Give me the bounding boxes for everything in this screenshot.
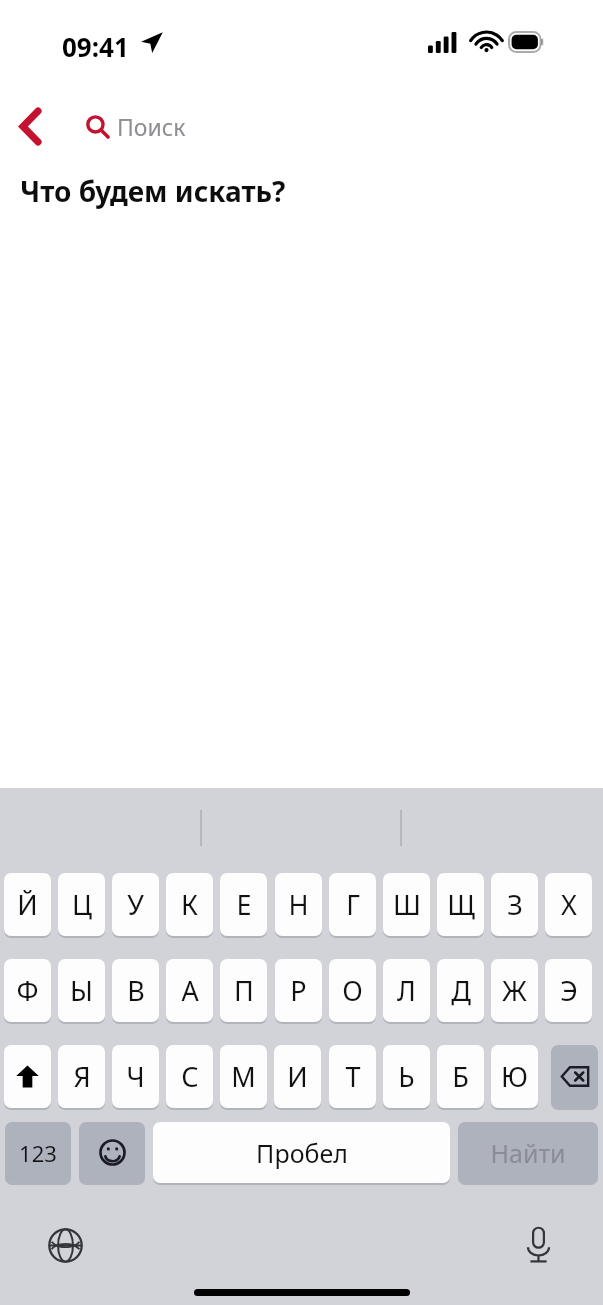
button[interactable]: У xyxy=(112,873,159,936)
button[interactable]: З xyxy=(491,873,538,936)
staticText: Ц xyxy=(72,886,92,923)
staticText: Ф xyxy=(16,972,39,1009)
button[interactable]: Р xyxy=(275,959,322,1022)
button[interactable]: О xyxy=(329,959,376,1022)
staticText: Ы xyxy=(70,972,93,1009)
staticText: Ж xyxy=(502,972,527,1009)
staticText: Е xyxy=(236,886,252,923)
button[interactable]: Ж xyxy=(491,959,538,1022)
button[interactable]: Х xyxy=(545,873,592,936)
staticText: Ю xyxy=(501,1058,528,1095)
button[interactable]: Ю xyxy=(491,1045,538,1108)
staticText: Э xyxy=(560,972,578,1009)
staticText: Н xyxy=(288,886,309,923)
staticText: О xyxy=(342,972,363,1009)
staticText: З xyxy=(507,886,523,923)
staticText: Ш xyxy=(393,886,421,923)
button[interactable]: Пробел xyxy=(153,1122,450,1183)
button[interactable]: Й xyxy=(4,873,51,936)
staticText: Ь xyxy=(398,1058,415,1095)
button[interactable]: П xyxy=(220,959,267,1022)
staticText: Л xyxy=(397,972,416,1009)
button[interactable]: Voice input xyxy=(512,1219,564,1271)
button[interactable]: Emoji xyxy=(79,1122,145,1183)
button[interactable]: Л xyxy=(383,959,430,1022)
button[interactable]: Поиск xyxy=(86,98,406,154)
button[interactable]: Д xyxy=(437,959,484,1022)
staticText: Д xyxy=(451,972,471,1009)
staticText: А xyxy=(181,972,199,1009)
button[interactable]: Switch keyboard language xyxy=(39,1219,91,1271)
staticText: 123 xyxy=(19,1138,57,1168)
button[interactable]: С xyxy=(166,1045,213,1108)
staticText: Б xyxy=(452,1058,469,1095)
staticText: Ч xyxy=(126,1058,145,1095)
staticText: Щ xyxy=(447,886,475,923)
button[interactable]: Э xyxy=(545,959,592,1022)
button[interactable]: Ц xyxy=(58,873,105,936)
button[interactable]: Ф xyxy=(4,959,51,1022)
button[interactable]: 123 xyxy=(5,1122,71,1183)
button[interactable]: Г xyxy=(329,873,376,936)
button[interactable]: Б xyxy=(437,1045,484,1108)
staticText: Р xyxy=(290,972,307,1009)
staticText: Т xyxy=(345,1058,361,1095)
staticText: И xyxy=(287,1058,308,1095)
button[interactable]: Щ xyxy=(437,873,484,936)
button[interactable]: В xyxy=(112,959,159,1022)
button[interactable]: Н xyxy=(275,873,322,936)
button[interactable]: К xyxy=(166,873,213,936)
button[interactable]: Ш xyxy=(383,873,430,936)
staticText: Найти xyxy=(490,1136,566,1170)
staticText: С xyxy=(181,1058,199,1095)
staticText: Что будем искать? xyxy=(20,172,286,210)
staticText: Й xyxy=(17,886,38,923)
button[interactable]: А xyxy=(166,959,213,1022)
button[interactable]: Ч xyxy=(112,1045,159,1108)
staticText: 09:41 xyxy=(62,29,129,64)
button[interactable]: Т xyxy=(329,1045,376,1108)
staticText: М xyxy=(231,1058,256,1095)
button[interactable]: И xyxy=(274,1045,321,1108)
staticText: Г xyxy=(346,886,360,923)
button[interactable]: Найти xyxy=(458,1122,598,1183)
staticText: Я xyxy=(73,1058,91,1095)
staticText: К xyxy=(181,886,198,923)
staticText: У xyxy=(127,886,144,923)
button[interactable]: Я xyxy=(58,1045,105,1108)
button[interactable]: Backspace xyxy=(551,1045,598,1108)
staticText: П xyxy=(234,972,254,1009)
button[interactable]: Shift xyxy=(4,1045,51,1108)
staticText: В xyxy=(127,972,145,1009)
button[interactable]: Back xyxy=(2,98,58,154)
staticText: Пробел xyxy=(256,1136,348,1170)
button[interactable]: Ы xyxy=(58,959,105,1022)
staticText: Поиск xyxy=(117,111,186,142)
staticText: Х xyxy=(561,886,577,923)
button[interactable]: М xyxy=(220,1045,267,1108)
button[interactable]: Ь xyxy=(383,1045,430,1108)
button[interactable]: Е xyxy=(220,873,267,936)
